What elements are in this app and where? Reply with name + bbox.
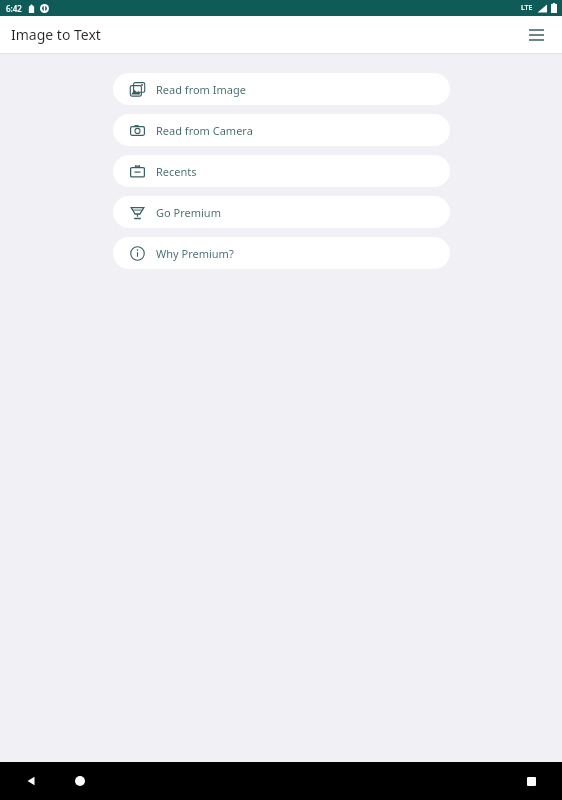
- staticText: 6:42: [6, 3, 22, 14]
- staticText: Go Premium: [156, 205, 221, 220]
- button[interactable]: Read from Camera: [113, 114, 450, 146]
- button[interactable]: Back: [16, 766, 46, 796]
- staticText: Read from Image: [156, 82, 246, 97]
- staticText: Image to Text: [11, 25, 101, 44]
- button[interactable]: Recents: [113, 155, 450, 187]
- button[interactable]: Recent apps: [516, 766, 546, 796]
- button[interactable]: Read from Image: [113, 73, 450, 105]
- staticText: Recents: [156, 164, 197, 179]
- button[interactable]: Open navigation menu: [520, 19, 552, 51]
- staticText: LTE: [521, 3, 533, 13]
- staticText: Read from Camera: [156, 123, 253, 138]
- staticText: Why Premium?: [156, 246, 234, 261]
- button[interactable]: Go Premium: [113, 196, 450, 228]
- button[interactable]: Why Premium?: [113, 237, 450, 269]
- button[interactable]: Home: [65, 766, 95, 796]
